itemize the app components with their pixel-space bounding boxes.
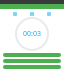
button[interactable] <box>13 12 17 16</box>
staticText: 00:03 <box>23 29 41 39</box>
button[interactable] <box>3 53 61 57</box>
button[interactable] <box>30 12 34 16</box>
button[interactable] <box>3 65 61 69</box>
button[interactable] <box>3 59 61 63</box>
button[interactable] <box>47 12 51 16</box>
